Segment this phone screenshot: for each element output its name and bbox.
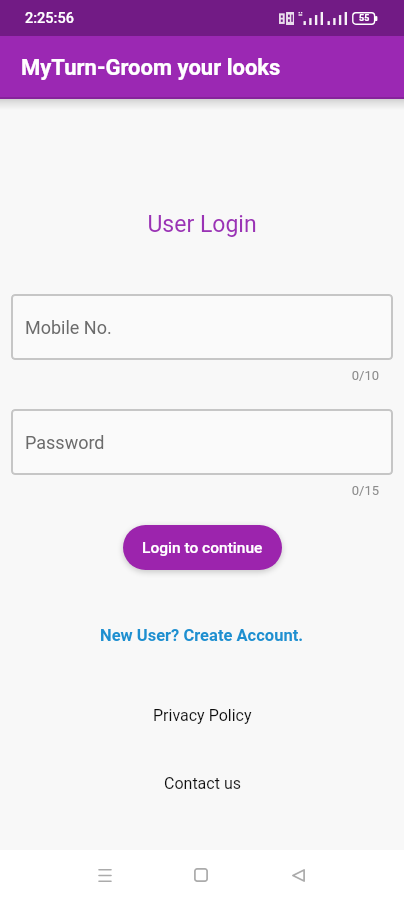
staticText: Contact us bbox=[164, 774, 241, 793]
button[interactable]: Login to continue bbox=[123, 525, 282, 570]
button[interactable]: Contact us bbox=[154, 769, 251, 798]
staticText: MyTurn-Groom your looks bbox=[21, 55, 281, 81]
button[interactable]: Recent apps bbox=[80, 850, 130, 900]
staticText: Privacy Policy bbox=[153, 706, 252, 725]
staticText: 55 bbox=[359, 13, 370, 24]
staticText: Mobile No. bbox=[25, 317, 112, 338]
button[interactable]: Home bbox=[176, 850, 226, 900]
staticText: Login to continue bbox=[142, 539, 263, 557]
button[interactable]: New User? Create Account. bbox=[90, 621, 314, 650]
button[interactable]: Mobile No. bbox=[11, 294, 393, 360]
button[interactable]: Privacy Policy bbox=[143, 701, 262, 730]
staticText: 2:25:56 bbox=[25, 10, 74, 27]
button[interactable]: Password bbox=[11, 409, 393, 475]
staticText: New User? Create Account. bbox=[100, 626, 304, 645]
staticText: 0/10 bbox=[11, 368, 379, 383]
button[interactable]: Back bbox=[273, 850, 323, 900]
staticText: Password bbox=[25, 432, 105, 453]
staticText: 0/15 bbox=[11, 483, 379, 498]
staticText: User Login bbox=[0, 211, 404, 238]
